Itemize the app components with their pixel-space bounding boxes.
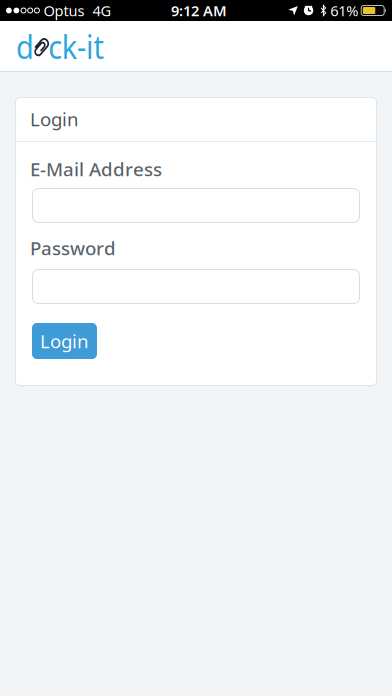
staticText: Password <box>30 236 116 260</box>
staticText: d <box>16 24 37 68</box>
staticText: Login <box>40 329 89 353</box>
staticText: ck-it <box>53 24 117 68</box>
button[interactable]: Login <box>32 323 97 359</box>
staticText: E-Mail Address <box>30 157 162 181</box>
staticText: 9:12 AM <box>171 1 227 20</box>
staticText: Optus <box>43 1 84 20</box>
staticText: 4G <box>92 1 111 20</box>
staticText: 61% <box>330 1 358 20</box>
staticText: Login <box>30 107 79 131</box>
button[interactable]: Password <box>32 269 360 304</box>
button[interactable]: E-Mail Address <box>32 188 360 223</box>
